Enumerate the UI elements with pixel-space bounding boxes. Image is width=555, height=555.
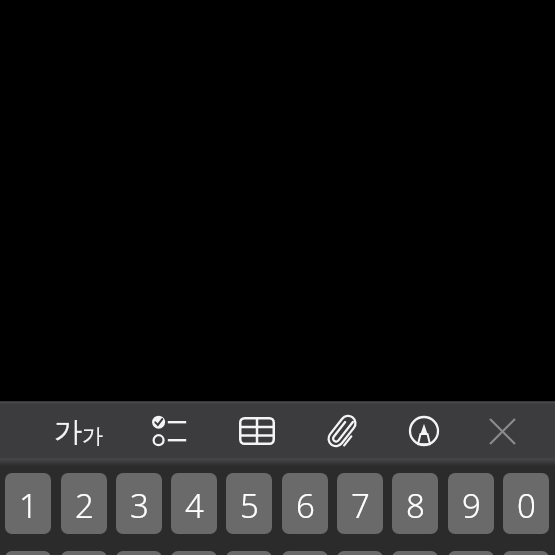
button[interactable]: 5 xyxy=(226,473,272,534)
staticText: 가 xyxy=(82,423,103,449)
staticText: 7 xyxy=(351,483,370,528)
button[interactable]: 9 xyxy=(448,473,494,534)
staticText: 가 xyxy=(54,414,82,449)
button[interactable]: ㅅ xyxy=(226,551,272,555)
staticText: 8 xyxy=(406,483,425,528)
button[interactable]: Checklist xyxy=(140,401,200,461)
button[interactable]: ㄷ xyxy=(116,551,162,555)
button[interactable]: 4 xyxy=(171,473,217,534)
staticText: 1 xyxy=(19,483,38,528)
button[interactable]: 3 xyxy=(116,473,162,534)
button[interactable]: Draw xyxy=(394,401,454,461)
staticText: 6 xyxy=(296,483,315,528)
button[interactable]: 7 xyxy=(337,473,383,534)
button[interactable]: ㄱ xyxy=(171,551,217,555)
staticText: 2 xyxy=(75,483,94,528)
button[interactable]: ㅛ xyxy=(282,551,328,555)
button[interactable]: ㅔ xyxy=(503,551,549,555)
button[interactable]: ㅕ xyxy=(337,551,383,555)
button[interactable]: 1 xyxy=(5,473,51,534)
button[interactable]: 6 xyxy=(282,473,328,534)
button[interactable]: Close xyxy=(472,401,532,461)
button[interactable]: 가 xyxy=(48,401,108,461)
staticText: 9 xyxy=(462,483,481,528)
staticText: 0 xyxy=(517,483,536,528)
staticText: 4 xyxy=(185,483,204,528)
staticText: 5 xyxy=(240,483,259,528)
button[interactable]: ㅈ xyxy=(61,551,107,555)
button[interactable]: ㅑ xyxy=(392,551,438,555)
button[interactable]: 0 xyxy=(503,473,549,534)
button[interactable]: Table xyxy=(227,401,287,461)
button[interactable]: Attach file xyxy=(312,401,372,461)
button[interactable]: 2 xyxy=(61,473,107,534)
button[interactable]: 8 xyxy=(392,473,438,534)
button[interactable]: ㅐ xyxy=(448,551,494,555)
button[interactable]: ㅂ xyxy=(5,551,51,555)
staticText: 3 xyxy=(130,483,149,528)
